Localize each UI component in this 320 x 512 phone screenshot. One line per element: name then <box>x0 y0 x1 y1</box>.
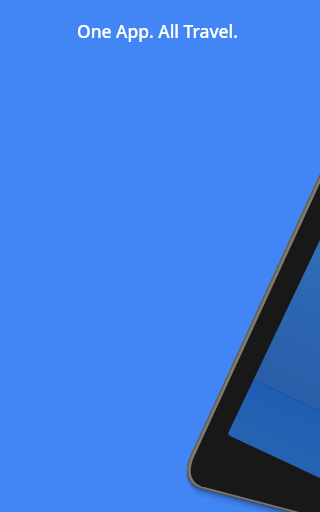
staticText: One App. All Travel. <box>77 19 238 43</box>
